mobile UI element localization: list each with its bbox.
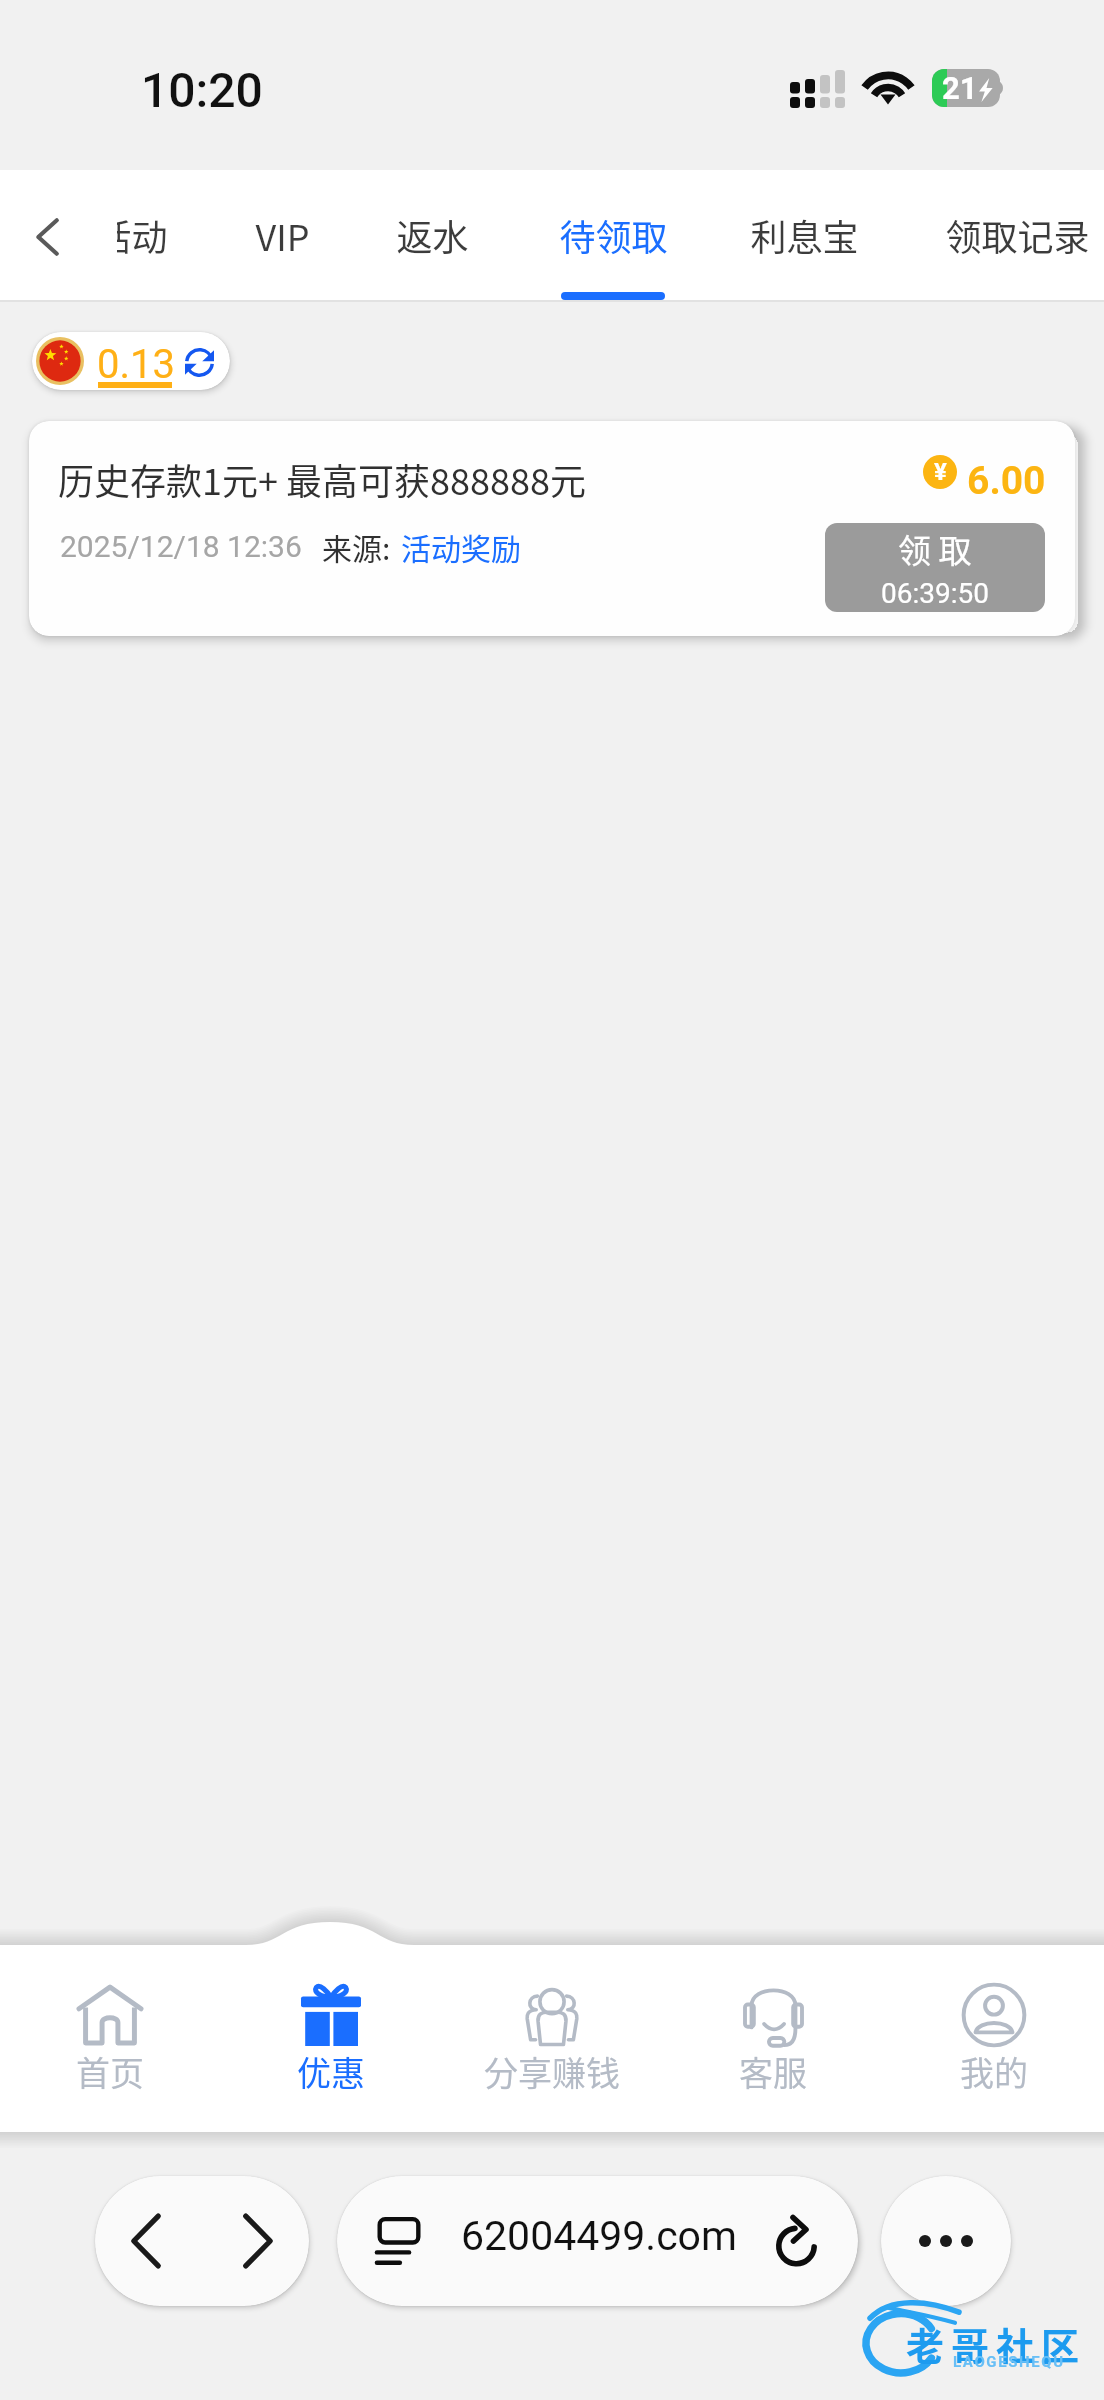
staticText: 10:20 <box>141 62 263 118</box>
staticText: 领取记录 <box>945 209 1090 261</box>
staticText: 历史存款1元+ 最高可获888888元 <box>58 453 586 505</box>
staticText: 领 取 <box>898 525 972 573</box>
button[interactable]: 首页 <box>0 1945 220 2132</box>
button[interactable]: 客服 <box>663 1945 883 2132</box>
staticText: LAOGESHEQU <box>953 2353 1065 2371</box>
staticText: 活动奖励 <box>401 525 521 568</box>
button[interactable]: 领取记录 <box>927 170 1104 300</box>
staticText: 活动 <box>95 209 168 261</box>
button[interactable]: Back <box>95 2176 197 2306</box>
button[interactable]: Forward <box>207 2176 309 2306</box>
button[interactable]: More options <box>881 2176 1011 2306</box>
staticText: 6.00 <box>967 458 1046 504</box>
staticText: 客服 <box>739 2047 807 2096</box>
staticText: 利息宝 <box>750 209 859 261</box>
button[interactable] <box>337 2176 858 2306</box>
button[interactable]: Reload <box>772 2212 822 2272</box>
button[interactable]: 优惠 <box>221 1945 441 2132</box>
staticText: 我的 <box>960 2047 1028 2096</box>
staticText: 2025/12/18 12:36 <box>60 529 302 564</box>
staticText: 21 <box>942 70 978 106</box>
staticText: 优惠 <box>297 2047 365 2096</box>
staticText: 待领取 <box>559 209 668 261</box>
button[interactable]: Back <box>0 170 117 300</box>
staticText: 06:39:50 <box>881 577 989 610</box>
staticText: 62004499.com <box>461 2212 737 2260</box>
button[interactable]: 领 取 <box>825 523 1045 612</box>
staticText: 返水 <box>396 209 469 261</box>
button[interactable]: 我的 <box>884 1945 1104 2132</box>
button[interactable] <box>32 332 230 390</box>
button[interactable]: VIP <box>192 170 372 300</box>
staticText: 0.13 <box>97 341 175 388</box>
button[interactable]: Refresh balance <box>182 345 217 380</box>
staticText: 老哥社区 <box>906 2316 1087 2371</box>
button[interactable]: 返水 <box>342 170 522 300</box>
button[interactable]: 活动 <box>41 170 221 300</box>
button[interactable]: 分享赚钱 <box>442 1945 662 2132</box>
staticText: 首页 <box>76 2047 144 2096</box>
button[interactable]: 待领取 <box>523 170 703 300</box>
button[interactable]: 利息宝 <box>714 170 894 300</box>
staticText: 分享赚钱 <box>484 2047 620 2096</box>
button[interactable] <box>29 421 1075 636</box>
staticText: 来源: <box>322 525 391 568</box>
staticText: ¥ <box>934 458 947 486</box>
staticText: VIP <box>255 209 310 261</box>
